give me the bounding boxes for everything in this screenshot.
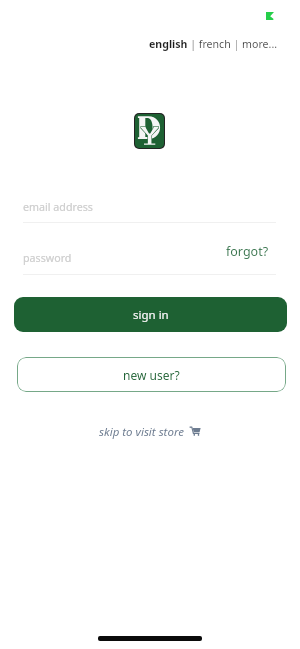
staticText: email address	[23, 200, 93, 215]
button[interactable]: new user?	[17, 357, 286, 392]
staticText: sign in	[133, 307, 169, 323]
button[interactable]: english | french | more...	[149, 37, 278, 51]
button[interactable]: Status indicator	[262, 8, 278, 24]
staticText: forgot?	[226, 243, 269, 260]
button[interactable]: forgot?	[226, 243, 269, 260]
staticText: password	[23, 251, 72, 266]
button[interactable]: sign in	[14, 297, 287, 332]
staticText: new user?	[123, 367, 180, 383]
staticText: english | french | more...	[149, 37, 278, 51]
button[interactable]: skip to visit store	[0, 424, 300, 440]
staticText: skip to visit store	[99, 424, 184, 440]
